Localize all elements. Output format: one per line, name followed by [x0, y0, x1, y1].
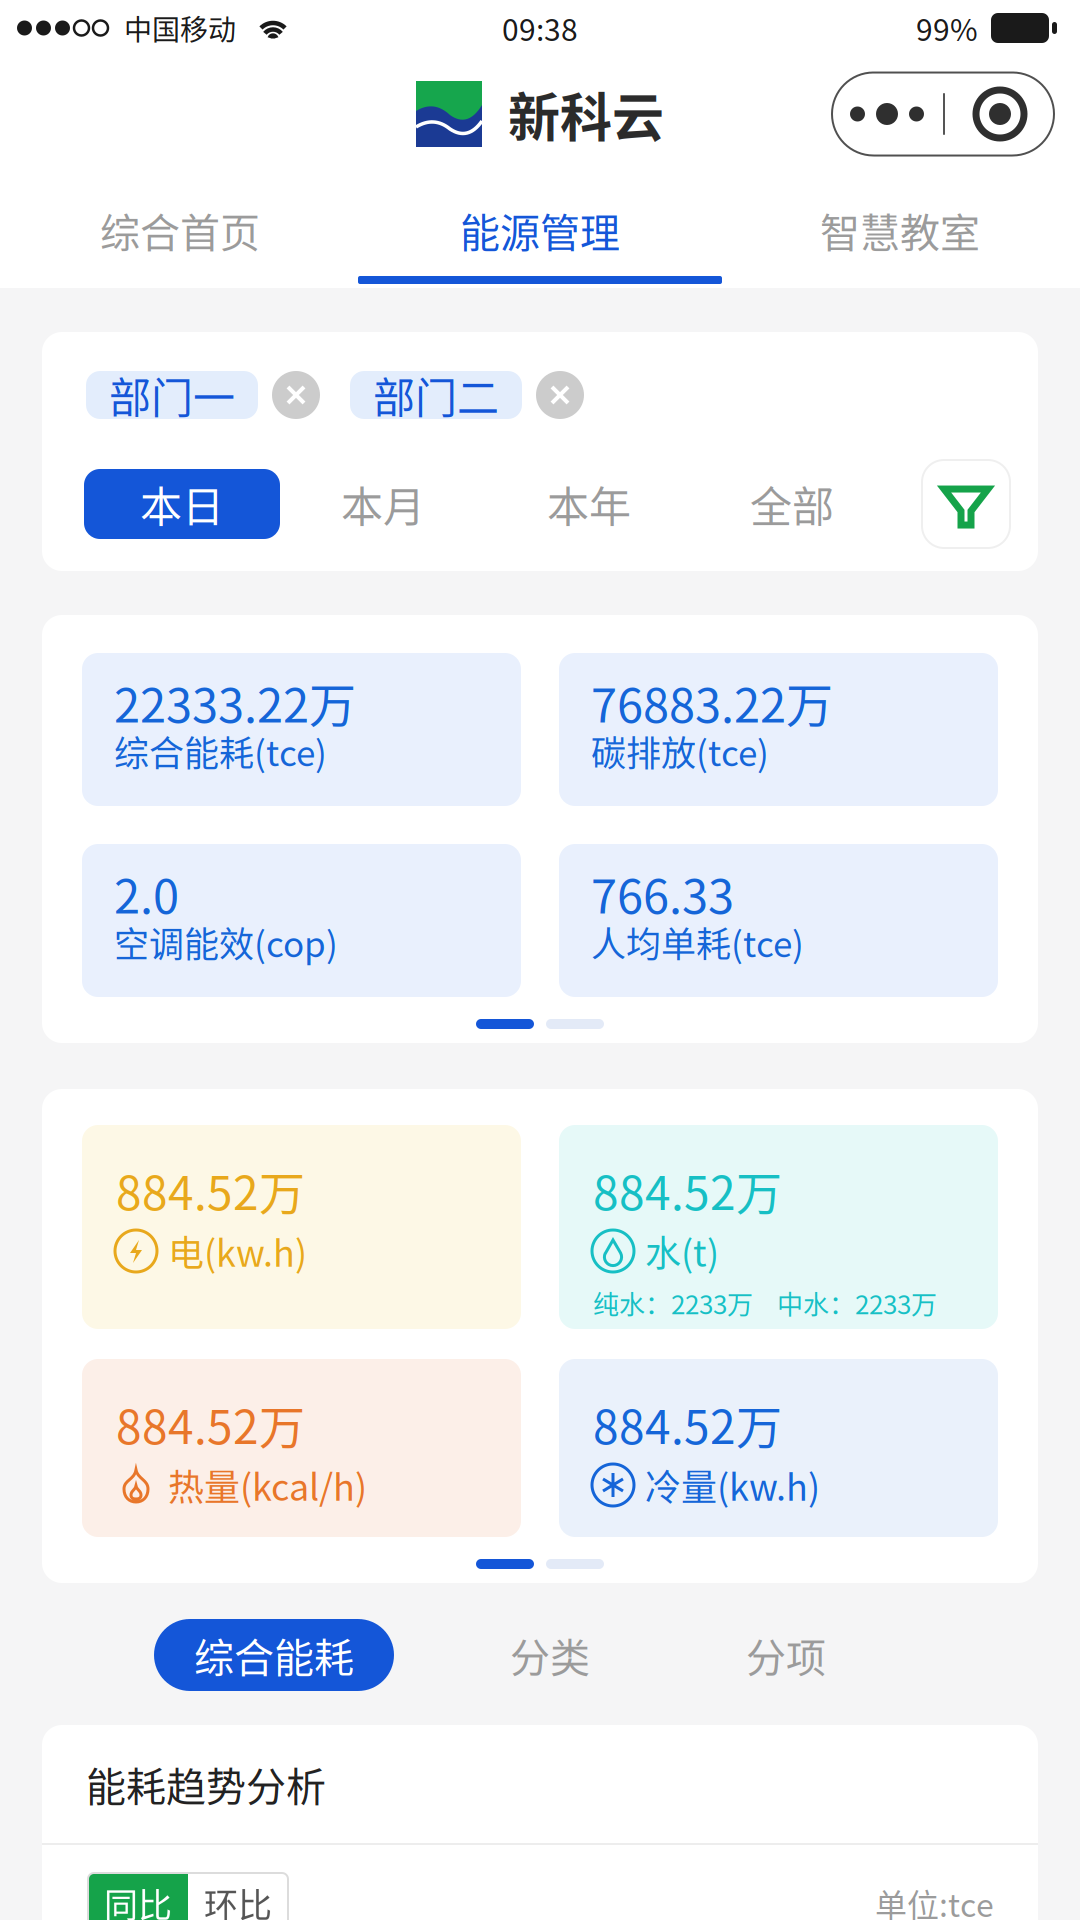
- staticText: 本日: [140, 474, 224, 534]
- staticText: 分类: [510, 1626, 590, 1684]
- staticText: 人均单耗(tce): [591, 917, 804, 967]
- button[interactable]: 全部: [692, 469, 892, 539]
- staticText: 综合首页: [100, 201, 260, 259]
- button[interactable]: 移除部门一: [272, 371, 320, 419]
- staticText: 76883.22万: [591, 668, 833, 736]
- staticText: 单位:tce: [875, 1880, 994, 1920]
- staticText: 同比: [104, 1878, 172, 1920]
- button[interactable]: 移除部门二: [536, 371, 584, 419]
- staticText: 部门二: [373, 365, 499, 425]
- staticText: 能耗趋势分析: [86, 1755, 326, 1813]
- staticText: 水(t): [645, 1225, 719, 1277]
- button[interactable]: 筛选: [922, 460, 1010, 548]
- staticText: 884.52万: [593, 1157, 782, 1223]
- staticText: 本月: [341, 474, 425, 534]
- staticText: 22333.22万: [114, 668, 356, 736]
- staticText: 中水：2233万: [777, 1284, 937, 1322]
- staticText: 884.52万: [593, 1391, 782, 1457]
- button[interactable]: 本月: [280, 469, 486, 539]
- button[interactable]: 同比: [88, 1873, 188, 1920]
- button[interactable]: 智慧教室: [720, 174, 1080, 286]
- staticText: 纯水：2233万: [593, 1284, 753, 1322]
- staticText: 空调能效(cop): [114, 917, 338, 967]
- staticText: 884.52万: [116, 1391, 305, 1457]
- staticText: 分项: [746, 1626, 826, 1684]
- button[interactable]: 环比: [188, 1873, 288, 1920]
- staticText: 2.0: [114, 859, 179, 927]
- staticText: 环比: [204, 1878, 272, 1920]
- staticText: 综合能耗(tce): [114, 726, 327, 776]
- staticText: 766.33: [591, 859, 734, 927]
- staticText: 884.52万: [116, 1157, 305, 1223]
- staticText: 热量(kcal/h): [168, 1459, 367, 1511]
- staticText: 综合能耗: [194, 1626, 354, 1684]
- staticText: 全部: [750, 474, 834, 534]
- staticText: 中国移动: [124, 8, 236, 48]
- button[interactable]: 综合首页: [0, 174, 360, 286]
- button[interactable]: 本年: [486, 469, 692, 539]
- staticText: 冷量(kw.h): [645, 1459, 820, 1511]
- staticText: 电(kw.h): [168, 1225, 307, 1277]
- button[interactable]: 综合能耗: [154, 1619, 394, 1691]
- button[interactable]: 本日: [84, 469, 280, 539]
- staticText: 碳排放(tce): [591, 726, 769, 776]
- button[interactable]: 能源管理: [360, 174, 720, 286]
- staticText: 99%: [916, 6, 978, 50]
- button[interactable]: 分类: [470, 1619, 630, 1691]
- staticText: 新科云: [508, 76, 664, 152]
- staticText: 部门一: [109, 365, 235, 425]
- button[interactable]: 分项: [706, 1619, 866, 1691]
- staticText: 智慧教室: [820, 201, 980, 259]
- staticText: 本年: [547, 474, 631, 534]
- staticText: 能源管理: [460, 201, 620, 259]
- staticText: 09:38: [502, 6, 578, 50]
